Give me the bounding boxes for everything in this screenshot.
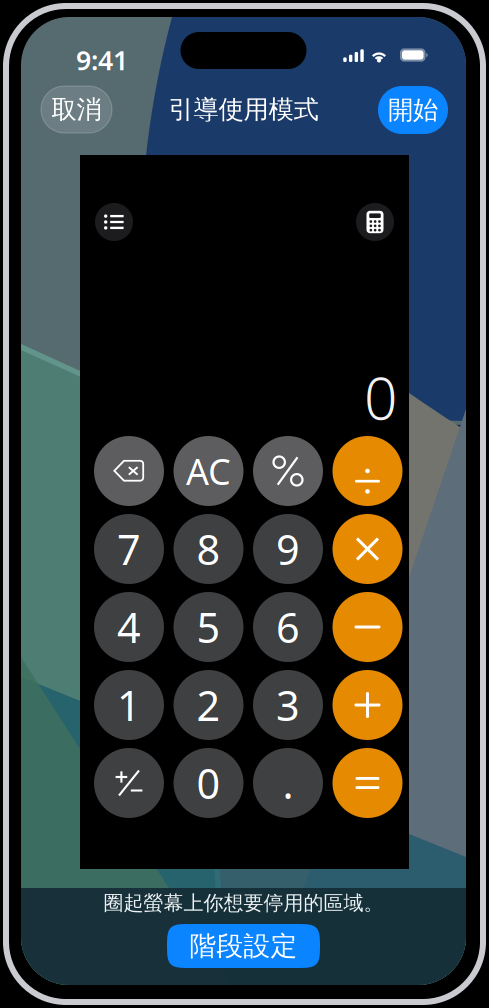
staticText: 5	[196, 600, 220, 654]
button[interactable]: 取消	[41, 86, 112, 133]
staticText: 8	[196, 522, 220, 576]
button[interactable]: 9	[253, 514, 323, 584]
staticText: 圈起螢幕上你想要停用的區域。	[103, 891, 383, 915]
staticText: 6	[276, 600, 300, 654]
button[interactable]: 2	[173, 670, 243, 740]
button[interactable]: Subtract	[332, 592, 402, 662]
button[interactable]: Divide	[332, 436, 402, 506]
button[interactable]: Delete	[94, 436, 164, 506]
staticText: 開始	[388, 94, 438, 125]
staticText: 2	[196, 678, 220, 732]
staticText: 3	[276, 678, 300, 732]
staticText: 0	[196, 756, 220, 810]
button[interactable]: Toggle sign	[94, 748, 164, 818]
button[interactable]: Equals	[332, 748, 402, 818]
button[interactable]: 0	[173, 748, 243, 818]
button[interactable]: 4	[94, 592, 164, 662]
button[interactable]: Add	[332, 670, 402, 740]
staticText: 取消	[51, 94, 101, 125]
staticText: 階段設定	[189, 930, 297, 962]
button[interactable]: 6	[253, 592, 323, 662]
staticText: 0	[364, 358, 397, 436]
button[interactable]: .	[253, 748, 323, 818]
staticText: 引導使用模式	[168, 94, 318, 125]
button[interactable]: Multiply	[332, 514, 402, 584]
staticText: 4	[117, 600, 141, 654]
staticText: .	[282, 756, 293, 810]
staticText: 7	[117, 522, 141, 576]
staticText: AC	[186, 447, 231, 495]
staticText: 9:41	[76, 42, 128, 78]
button[interactable]: 1	[94, 670, 164, 740]
button[interactable]: 開始	[378, 86, 448, 134]
button[interactable]: AC	[173, 436, 243, 506]
staticText: 1	[117, 678, 141, 732]
button[interactable]: History	[95, 203, 133, 241]
button[interactable]: 3	[253, 670, 323, 740]
button[interactable]: Percent	[253, 436, 323, 506]
button[interactable]: Switch calculator	[356, 203, 394, 241]
button[interactable]: 階段設定	[167, 924, 320, 968]
button[interactable]: 5	[173, 592, 243, 662]
staticText: 9	[276, 522, 300, 576]
button[interactable]: 7	[94, 514, 164, 584]
button[interactable]: 8	[173, 514, 243, 584]
